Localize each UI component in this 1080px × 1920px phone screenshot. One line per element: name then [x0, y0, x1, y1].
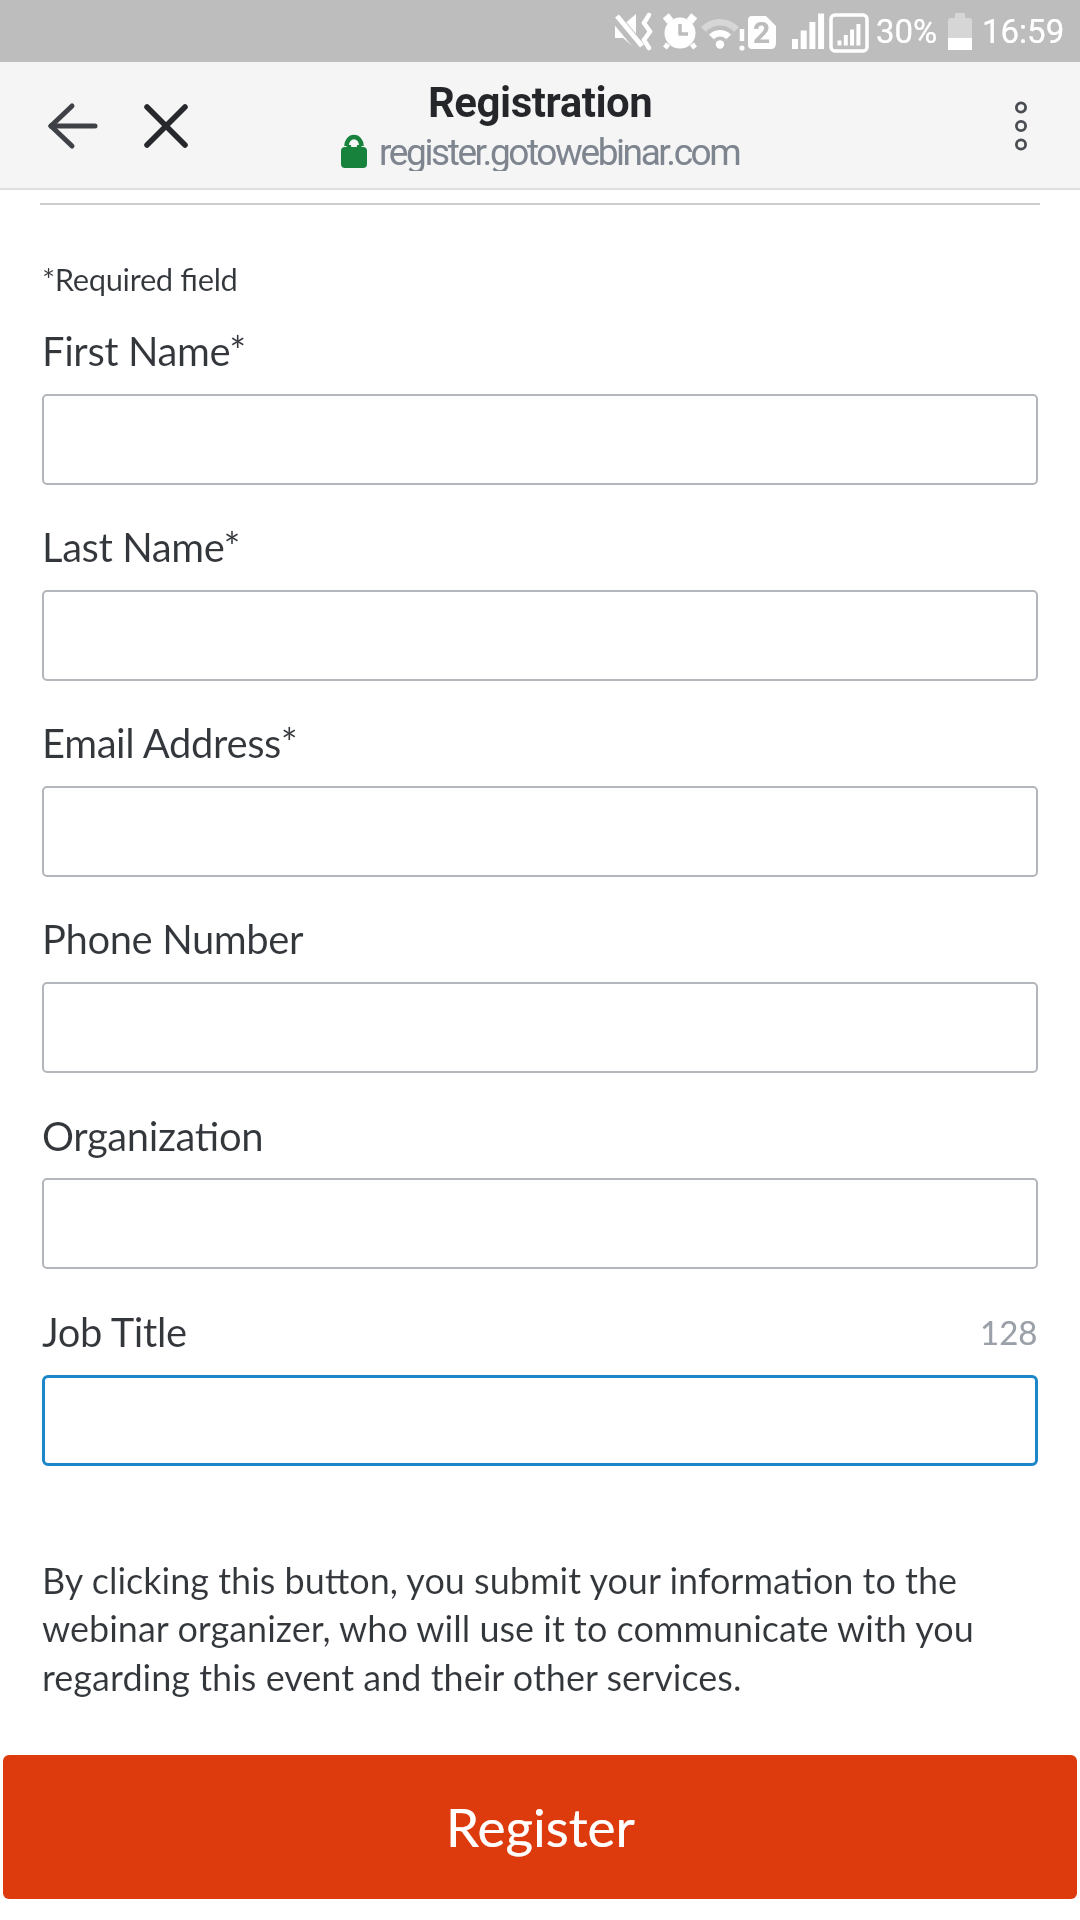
staticText: register.gotowebinar.com: [379, 131, 740, 171]
button[interactable]: [42, 1178, 1038, 1269]
staticText: Register: [446, 1795, 635, 1859]
staticText: 16:59: [982, 12, 1065, 51]
button[interactable]: Register: [3, 1755, 1077, 1899]
staticText: Phone Number: [42, 915, 304, 963]
button[interactable]: [42, 394, 1038, 485]
staticText: 30%: [876, 12, 938, 51]
staticText: First Name*: [42, 327, 246, 375]
staticText: Last Name*: [42, 523, 241, 571]
button[interactable]: [42, 982, 1038, 1073]
button[interactable]: [42, 1375, 1038, 1466]
button[interactable]: [130, 90, 202, 162]
button[interactable]: [42, 786, 1038, 877]
button[interactable]: [42, 590, 1038, 681]
staticText: 2: [753, 15, 771, 50]
staticText: Organization: [42, 1112, 264, 1160]
button[interactable]: [985, 90, 1057, 162]
staticText: Email Address*: [42, 719, 298, 767]
staticText: 128: [980, 1312, 1038, 1352]
staticText: *Required field: [42, 260, 238, 297]
staticText: By clicking this button, you submit your…: [42, 1558, 974, 1699]
staticText: Registration: [428, 78, 653, 126]
button[interactable]: [36, 90, 108, 162]
staticText: Job Title: [42, 1308, 187, 1356]
